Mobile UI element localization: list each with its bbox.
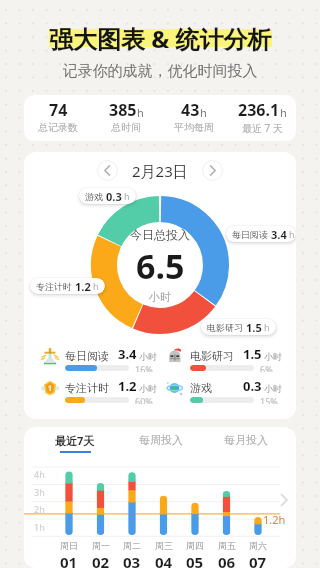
staticText: 小时 (262, 350, 283, 362)
staticText: 3.4 (118, 345, 137, 363)
button[interactable]: Next day (202, 160, 223, 181)
button[interactable]: 电影研习 (201, 319, 276, 335)
button[interactable]: 每周投入 (118, 433, 203, 452)
staticText: 01 (60, 552, 78, 568)
staticText: 1.5 (243, 345, 262, 363)
staticText: 周五 (218, 540, 236, 551)
staticText: 3h (34, 486, 45, 498)
staticText: 0.3 (106, 189, 122, 204)
staticText: 每日阅读 (232, 229, 268, 240)
staticText: 周三 (155, 540, 173, 551)
staticText: 平均每周 (174, 121, 214, 134)
staticText: 15% (260, 395, 278, 404)
staticText: 236.1 (238, 99, 280, 121)
staticText: h (200, 105, 207, 120)
button[interactable]: 每月投入 (203, 433, 288, 452)
staticText: 周一 (92, 540, 110, 551)
staticText: 小时 (137, 382, 158, 394)
staticText: 周六 (249, 540, 267, 551)
staticText: 06 (218, 552, 236, 568)
staticText: 74 (49, 99, 68, 121)
staticText: 今日总投入 (130, 227, 190, 242)
staticText: 1.5 (246, 320, 262, 335)
button[interactable]: 专注计时 (41, 376, 165, 404)
staticText: 3.4 (271, 227, 287, 242)
staticText: 总记录数 (38, 121, 78, 134)
staticText: 总时间 (111, 121, 141, 134)
staticText: 电影研习 (190, 349, 234, 363)
button[interactable]: 每日阅读 (226, 226, 296, 242)
staticText: h (137, 105, 144, 120)
button[interactable]: Previous day (97, 160, 118, 181)
staticText: 每日阅读 (65, 349, 109, 363)
staticText: 02 (92, 552, 110, 568)
staticText: 游戏 (85, 191, 103, 202)
staticText: 2h (34, 503, 45, 515)
staticText: 每月投入 (224, 433, 268, 447)
staticText: h (124, 190, 130, 202)
button[interactable]: 最近7天 (32, 433, 118, 453)
staticText: 2月23日 (132, 161, 188, 181)
staticText: 385 (109, 99, 137, 121)
staticText: 1.2 (75, 279, 91, 294)
staticText: h (280, 105, 287, 120)
staticText: 强大图表 & 统计分析 (49, 22, 272, 55)
staticText: 小时 (137, 350, 158, 362)
staticText: 07 (249, 552, 267, 568)
staticText: 1.2 (118, 377, 137, 395)
staticText: 0.3 (243, 377, 262, 395)
staticText: 电影研习 (207, 322, 243, 333)
staticText: 小时 (149, 290, 171, 304)
staticText: h (289, 228, 290, 240)
button[interactable]: 游戏 (166, 376, 290, 404)
button[interactable]: 游戏 (79, 188, 136, 204)
staticText: 周日 (60, 540, 78, 551)
staticText: 周四 (186, 540, 204, 551)
button[interactable]: 每日阅读 (41, 344, 165, 372)
staticText: 专注计时 (36, 281, 72, 292)
staticText: 每周投入 (139, 433, 183, 447)
staticText: 43 (181, 99, 200, 121)
staticText: 小时 (262, 382, 283, 394)
staticText: 60% (135, 395, 153, 404)
staticText: 1h (34, 521, 45, 533)
staticText: 周二 (123, 540, 141, 551)
staticText: 04 (155, 552, 173, 568)
staticText: 05 (186, 552, 204, 568)
staticText: h (93, 280, 99, 292)
staticText: 16% (135, 363, 153, 372)
button[interactable]: 电影研习 (166, 344, 290, 372)
staticText: 记录你的成就，优化时间投入 (0, 62, 320, 81)
staticText: 1.2h (263, 512, 286, 527)
staticText: 最近 7 天 (242, 121, 283, 135)
staticText: h (264, 321, 270, 333)
staticText: 4h (34, 468, 45, 480)
staticText: 专注计时 (65, 381, 109, 395)
staticText: 03 (123, 552, 141, 568)
staticText: 6.5 (136, 243, 185, 289)
button[interactable]: 专注计时 (30, 278, 105, 294)
staticText: 6% (260, 363, 273, 372)
staticText: 最近7天 (55, 433, 95, 448)
staticText: 游戏 (190, 381, 212, 395)
